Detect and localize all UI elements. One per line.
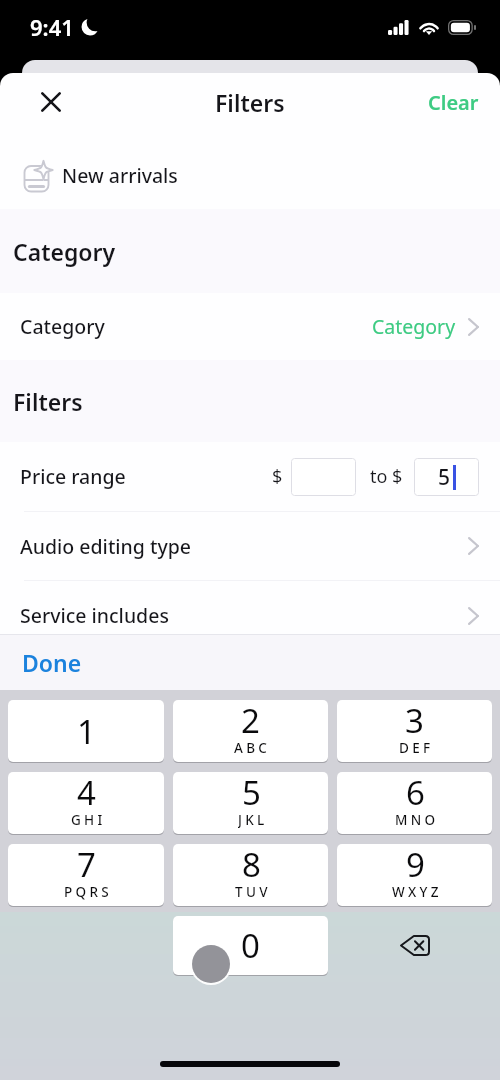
staticText: 3 xyxy=(405,700,424,743)
staticText: Category xyxy=(372,313,456,340)
staticText: 2 xyxy=(241,700,260,743)
staticText: $ xyxy=(272,464,283,489)
staticText: MNO xyxy=(395,811,439,828)
button[interactable]: Service includes xyxy=(0,581,500,634)
button[interactable]: 8 xyxy=(173,844,328,906)
staticText: 6 xyxy=(406,772,425,815)
button[interactable]: 1 xyxy=(8,700,164,762)
button[interactable]: Maximum price xyxy=(414,458,479,496)
staticText: Filters xyxy=(215,87,285,118)
staticText: 7 xyxy=(77,844,96,887)
button[interactable]: New arrivals xyxy=(0,131,500,209)
staticText: 5 xyxy=(438,463,451,492)
staticText: ABC xyxy=(234,739,271,756)
staticText: 8 xyxy=(242,844,261,887)
button[interactable]: Clear xyxy=(414,79,500,126)
staticText: Filters xyxy=(13,386,83,417)
button[interactable]: Category xyxy=(0,293,500,360)
button[interactable]: 5 xyxy=(173,772,328,834)
button[interactable]: 9 xyxy=(337,844,492,906)
staticText: Price range xyxy=(20,463,126,490)
staticText: 5 xyxy=(242,772,261,815)
staticText: to $ xyxy=(370,464,403,489)
button[interactable]: 0 xyxy=(173,916,328,975)
button[interactable]: 4 xyxy=(8,772,164,834)
staticText: Category xyxy=(13,236,116,267)
button[interactable]: Backspace xyxy=(337,916,492,975)
staticText: DEF xyxy=(399,739,434,756)
button[interactable]: 6 xyxy=(337,772,492,834)
staticText: Clear xyxy=(428,89,479,116)
staticText: 1 xyxy=(77,709,96,754)
button[interactable]: 3 xyxy=(337,700,492,762)
staticText: Service includes xyxy=(20,602,169,629)
button[interactable]: 7 xyxy=(8,844,164,906)
staticText: JKL xyxy=(238,811,268,828)
button[interactable]: Close xyxy=(31,82,71,122)
staticText: Audio editing type xyxy=(20,533,192,560)
staticText: New arrivals xyxy=(62,162,178,189)
staticText: 0 xyxy=(241,923,260,968)
staticText: WXYZ xyxy=(392,883,442,900)
button[interactable]: Done xyxy=(10,639,94,686)
staticText: 9 xyxy=(406,844,425,887)
button[interactable]: Minimum price xyxy=(291,458,356,496)
staticText: Done xyxy=(22,647,82,678)
staticText: GHI xyxy=(71,811,106,828)
button[interactable]: 2 xyxy=(173,700,328,762)
button[interactable]: Audio editing type xyxy=(0,512,500,580)
staticText: 9:41 xyxy=(30,12,74,42)
staticText: 4 xyxy=(77,772,96,815)
staticText: TUV xyxy=(235,883,271,900)
staticText: Category xyxy=(20,313,105,340)
staticText: PQRS xyxy=(64,883,112,900)
